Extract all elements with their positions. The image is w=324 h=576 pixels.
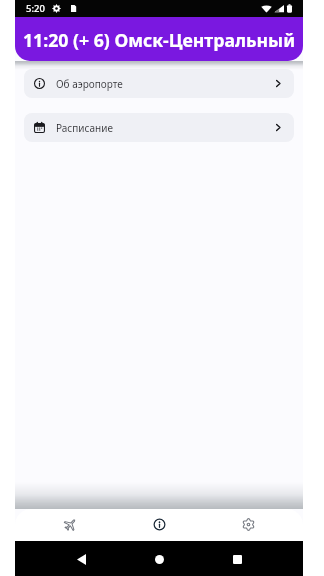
button[interactable]: Flights: [25, 509, 115, 541]
staticText: 11:20 (+ 6) Омск-Центральный: [23, 28, 296, 52]
staticText: 5:20: [26, 2, 45, 15]
button[interactable]: Information: [115, 509, 204, 541]
button[interactable]: Settings: [204, 509, 293, 541]
button[interactable]: Расписание: [24, 113, 294, 142]
button[interactable]: Об аэропорте: [24, 69, 294, 98]
staticText: Об аэропорте: [56, 77, 123, 91]
button[interactable]: Back: [69, 547, 93, 571]
button[interactable]: Home: [147, 547, 171, 571]
staticText: Расписание: [56, 121, 113, 135]
button[interactable]: Recents: [225, 547, 249, 571]
